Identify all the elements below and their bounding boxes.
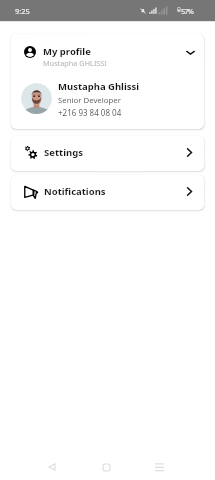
button[interactable]: Recent apps <box>145 449 173 477</box>
staticText: Mustapha Ghlissi <box>58 80 140 93</box>
staticText: 9:25 <box>15 6 30 16</box>
button[interactable]: Settings <box>11 136 204 171</box>
staticText: 57% <box>181 6 193 16</box>
button[interactable]: Home <box>92 449 120 477</box>
staticText: Mustapha GHLISSI <box>43 58 107 68</box>
button[interactable]: Back <box>38 449 66 477</box>
button[interactable]: Notifications <box>11 175 204 210</box>
staticText: Notifications <box>44 185 184 198</box>
staticText: +216 93 84 08 04 <box>58 107 122 118</box>
staticText: My profile <box>43 45 91 58</box>
other: Expand profile <box>185 47 196 58</box>
staticText: Senior Developer <box>58 95 121 106</box>
staticText: Settings <box>44 146 184 159</box>
button[interactable]: My profile <box>11 34 204 73</box>
